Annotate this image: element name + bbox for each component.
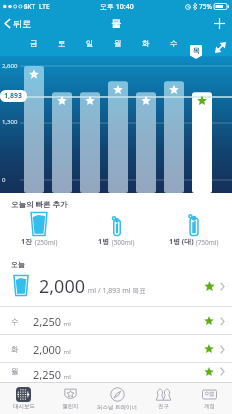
- staticText: 2,600: [2, 62, 18, 70]
- staticText: 금: [30, 39, 38, 48]
- staticText: 월: [11, 367, 19, 376]
- staticText: 계정: [204, 403, 215, 410]
- button[interactable]: 오늘: [0, 254, 232, 307]
- staticText: 챌린지: [62, 403, 79, 410]
- button[interactable]: 1병 (대): [155, 212, 232, 247]
- staticText: 대시보드: [13, 403, 35, 410]
- staticText: ml: [62, 348, 71, 356]
- button[interactable]: 1잔: [0, 212, 78, 247]
- staticText: 2,250: [33, 367, 62, 382]
- staticText: 75%: [199, 2, 212, 11]
- button[interactable]: 퍼스널 트레이너: [94, 383, 140, 414]
- button[interactable]: 일: [80, 34, 100, 52]
- button[interactable]: 계정: [186, 383, 232, 414]
- staticText: (250ml): [33, 238, 58, 247]
- staticText: 0: [2, 176, 6, 184]
- button[interactable]: 수: [164, 34, 184, 52]
- staticText: 월: [114, 39, 122, 48]
- staticText: ml: [62, 320, 71, 328]
- staticText: LTE: [39, 2, 50, 11]
- staticText: 물: [111, 17, 121, 30]
- button[interactable]: Expand: [214, 41, 226, 53]
- staticText: 1병 (대): [169, 237, 194, 247]
- button[interactable]: 화: [0, 335, 232, 363]
- button[interactable]: 월: [108, 34, 128, 52]
- staticText: (500ml): [110, 238, 135, 247]
- staticText: 화: [11, 345, 19, 354]
- button[interactable]: 화: [136, 34, 156, 52]
- button[interactable]: 월: [0, 363, 232, 382]
- staticText: 일: [86, 39, 94, 48]
- button[interactable]: Add: [207, 13, 232, 34]
- staticText: 오후 10:40: [100, 2, 134, 12]
- staticText: SKT: [24, 2, 36, 11]
- staticText: ml: [62, 373, 71, 381]
- staticText: 목: [193, 46, 200, 55]
- staticText: 오늘의 빠른 추가: [11, 199, 68, 209]
- staticText: 화: [142, 39, 150, 48]
- button[interactable]: 1병: [78, 212, 155, 247]
- button[interactable]: 토: [52, 34, 72, 52]
- button[interactable]: 수: [0, 307, 232, 335]
- button[interactable]: 친구: [140, 383, 186, 414]
- staticText: 토: [58, 39, 66, 48]
- staticText: 오늘: [11, 260, 25, 269]
- button[interactable]: 대시보드: [0, 383, 47, 414]
- staticText: 수: [170, 39, 178, 48]
- staticText: 수: [11, 317, 19, 326]
- button[interactable]: 금: [24, 34, 44, 52]
- staticText: 1,893: [4, 91, 23, 101]
- staticText: 1잔: [21, 237, 33, 247]
- button[interactable]: 뒤로: [0, 13, 39, 34]
- staticText: 퍼스널 트레이너: [97, 403, 137, 411]
- staticText: 1병: [98, 237, 110, 247]
- staticText: 뒤로: [13, 18, 31, 29]
- button[interactable]: 챌린지: [47, 383, 94, 414]
- staticText: (750ml): [194, 238, 219, 247]
- staticText: 2,000: [33, 342, 62, 357]
- staticText: 2,250: [33, 314, 62, 329]
- staticText: 1,300: [2, 118, 18, 126]
- staticText: 2,000: [39, 274, 86, 299]
- staticText: ml / 1,893 ml 목표: [86, 286, 147, 296]
- button[interactable]: 목: [190, 45, 202, 59]
- staticText: 친구: [158, 403, 169, 410]
